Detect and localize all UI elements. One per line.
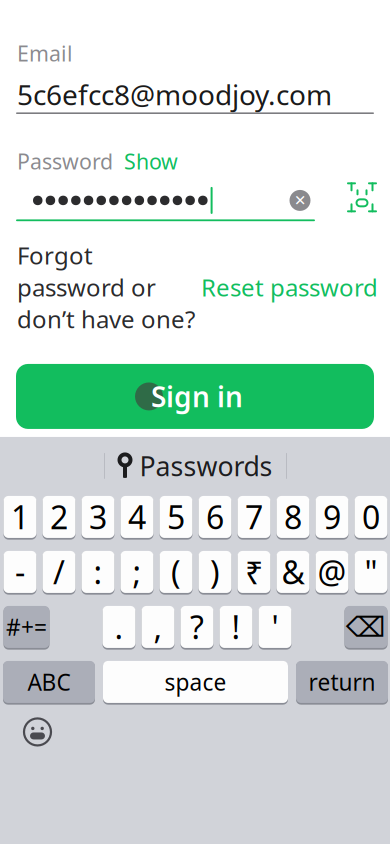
button[interactable]: 4 [120,495,153,539]
button[interactable]: Show [124,147,178,175]
button[interactable]: #+= [3,605,49,649]
staticText: : [93,551,102,593]
staticText: ; [132,551,141,593]
staticText: 9 [323,496,341,538]
staticText: ? [190,606,204,648]
button[interactable]: space [103,660,288,704]
button[interactable]: Clear password [285,185,315,215]
staticText: ✕ [294,192,306,209]
button[interactable]: " [354,550,387,594]
button[interactable]: 0 [354,495,387,539]
button[interactable]: 8 [276,495,309,539]
staticText: 0 [362,496,380,538]
staticText: ( [171,551,181,593]
button[interactable]: @ [315,550,348,594]
button[interactable]: Delete [344,605,387,649]
button[interactable]: return [296,660,388,704]
button[interactable]: Sign in with Face ID [346,181,390,221]
button[interactable]: Passwords [118,448,272,484]
button[interactable]: Emoji [20,715,54,749]
button[interactable]: , [141,605,174,649]
staticText: Reset password [201,271,378,303]
staticText: space [164,667,226,697]
staticText: Forgot password or don’t have one? [17,239,201,335]
staticText: ⌫ [346,611,386,643]
staticText: 5 [167,496,185,538]
button[interactable]: ! [219,605,252,649]
button[interactable]: 9 [315,495,348,539]
button[interactable]: 7 [237,495,270,539]
button[interactable]: . [102,605,135,649]
staticText: , [153,606,162,648]
button[interactable]: ) [198,550,231,594]
button[interactable]: 3 [81,495,114,539]
staticText: ' [271,606,278,648]
staticText: 7 [245,496,263,538]
button[interactable]: ? [180,605,213,649]
staticText: & [281,551,304,593]
button[interactable]: - [3,550,36,594]
staticText: / [53,551,65,593]
staticText: - [15,551,25,593]
staticText: @ [317,551,346,593]
button[interactable]: : [81,550,114,594]
staticText: 5c6efcc8@moodjoy.com [17,76,332,113]
button[interactable]: & [276,550,309,594]
staticText: Show [124,147,178,175]
staticText: 4 [128,496,146,538]
staticText: 3 [89,496,107,538]
staticText: 2 [50,496,68,538]
staticText: " [364,551,377,593]
staticText: Sign in [151,378,243,415]
staticText: Passwords [139,448,272,484]
button[interactable]: 6 [198,495,231,539]
staticText: ) [210,551,220,593]
staticText: ₹ [245,551,263,593]
staticText: return [308,667,375,697]
button[interactable]: 1 [3,495,36,539]
staticText: #+= [6,612,47,642]
button[interactable]: 5c6efcc8@moodjoy.com [0,76,390,112]
staticText: . [114,606,123,648]
staticText: Password [17,147,113,175]
button[interactable]: ; [120,550,153,594]
staticText: 6 [206,496,224,538]
button[interactable]: ✕ [16,181,315,219]
staticText: Email [17,39,73,67]
staticText: 1 [11,496,29,538]
button[interactable]: ( [159,550,192,594]
staticText: ABC [27,667,70,697]
button[interactable]: 5 [159,495,192,539]
staticText: 8 [284,496,302,538]
button[interactable]: / [42,550,75,594]
button[interactable]: ₹ [237,550,270,594]
button[interactable]: Reset password [201,271,378,303]
button[interactable]: ABC [3,660,95,704]
staticText: ! [231,606,240,648]
button[interactable]: Sign in [0,364,390,429]
button[interactable]: ' [258,605,291,649]
button[interactable]: 2 [42,495,75,539]
